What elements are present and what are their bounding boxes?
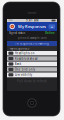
staticText: One bird only [15,68,35,71]
staticText: Headlights on [15,51,35,55]
button[interactable]: One bird only [7,67,57,73]
staticText: Online [45,31,55,35]
staticText: 14 responses remaining [15,42,49,45]
staticText: 9:41 AM [26,19,38,22]
button[interactable]: Account [8,22,16,31]
staticText: •••• [8,19,12,22]
staticText: + [51,24,53,29]
button[interactable]: Add response [48,22,56,31]
staticText: Low visibility [15,73,32,76]
staticText: Signal status [9,31,25,35]
button[interactable]: Roadblock ahead [7,56,57,62]
staticText: My Responses [10,47,29,50]
button[interactable]: Headlights on [7,51,57,56]
staticText: My Responses [18,24,46,29]
staticText: Bank [15,62,21,66]
staticText: pinned.example.com [18,36,46,40]
staticText: Pull down to refresh [17,79,47,83]
button[interactable]: Bank [7,62,57,67]
staticText: Roadblock ahead [15,57,38,60]
button[interactable]: Low visibility [7,73,57,78]
